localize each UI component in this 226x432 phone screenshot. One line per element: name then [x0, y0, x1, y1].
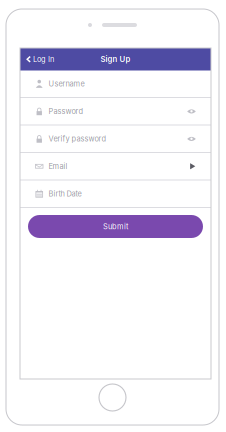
- staticText: Sign Up: [100, 55, 130, 64]
- button[interactable]: Log In: [20, 48, 60, 70]
- staticText: Username: [48, 79, 84, 88]
- staticText: Submit: [103, 222, 128, 231]
- button[interactable]: Submit: [28, 215, 203, 238]
- staticText: Email: [48, 162, 67, 171]
- staticText: Log In: [33, 55, 54, 64]
- staticText: Verify password: [48, 134, 106, 143]
- staticText: Password: [48, 107, 83, 116]
- staticText: Birth Date: [48, 189, 81, 198]
